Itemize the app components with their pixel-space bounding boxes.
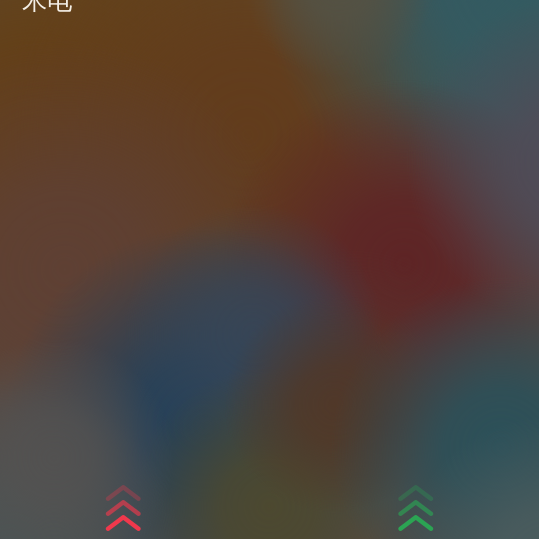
staticText: 米电 xyxy=(22,0,72,16)
